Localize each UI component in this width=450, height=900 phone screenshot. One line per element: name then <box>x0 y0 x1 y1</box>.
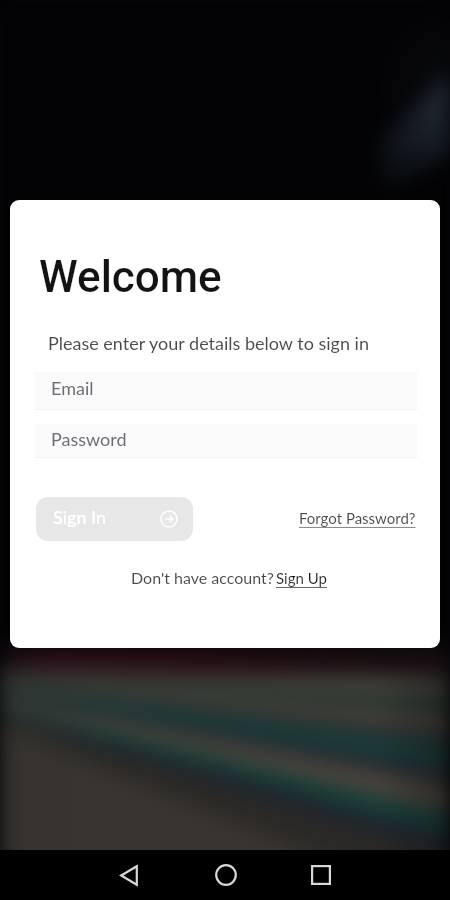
button[interactable]: Password <box>35 424 417 458</box>
staticText: Email <box>51 377 94 399</box>
button[interactable]: Sign In <box>36 497 193 541</box>
button[interactable]: Back <box>105 850 153 900</box>
button[interactable]: Forgot Password? <box>299 509 416 527</box>
button[interactable]: Recents <box>297 850 345 900</box>
button[interactable]: Home <box>202 850 250 900</box>
staticText: Forgot Password? <box>299 509 416 527</box>
staticText: Please enter your details below to sign … <box>48 332 369 354</box>
button[interactable]: Email <box>35 372 417 410</box>
staticText: Sign Up <box>276 569 327 587</box>
staticText: Password <box>51 428 127 450</box>
staticText: Welcome <box>39 251 222 303</box>
staticText: Sign In <box>53 506 107 528</box>
staticText: Don't have account? <box>131 568 274 587</box>
button[interactable]: Sign Up <box>276 569 327 587</box>
